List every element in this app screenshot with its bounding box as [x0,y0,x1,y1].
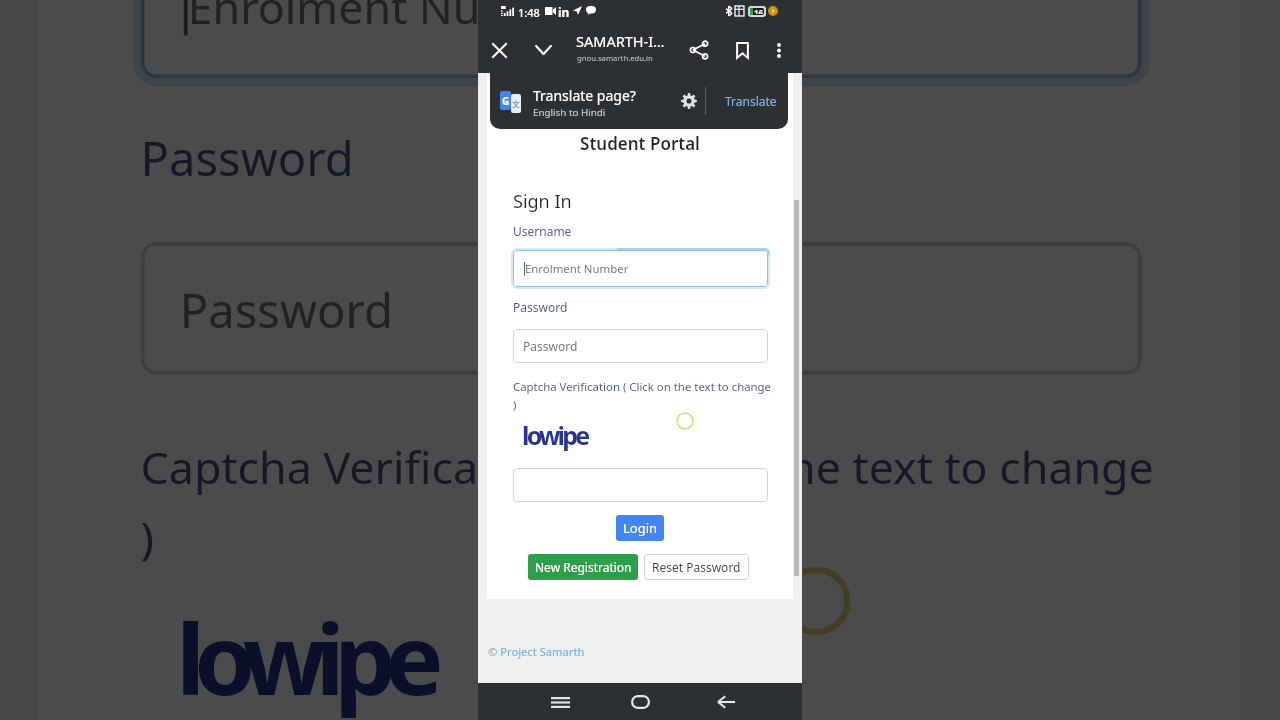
staticText: Translate page? [533,86,636,105]
staticText: Enrolment Number [188,0,596,39]
staticText: Translate [725,93,777,109]
button[interactable]: Expand [523,30,563,70]
button[interactable]: New Registration [528,554,638,580]
staticText: Password [141,125,357,187]
staticText: Password [180,277,396,340]
staticText: Enrolment Number [525,261,629,277]
button[interactable]: Password [513,329,768,363]
staticText: Password [523,338,578,354]
staticText: SAMARTH-I… [576,31,665,51]
staticText: gnou.samarth.edu.in [577,53,653,63]
staticText: 文 [512,99,520,109]
button[interactable]: Bookmark [722,30,762,70]
staticText: lowipe [522,418,588,452]
button[interactable]: Close [479,30,519,70]
staticText: in [558,4,570,20]
staticText: Username [513,223,572,239]
button[interactable]: Enrolment Number [141,0,1142,78]
staticText: G [502,94,510,108]
staticText: Sign In [513,189,572,214]
button[interactable]: Password [141,242,1142,375]
staticText: 1:48 [518,5,540,20]
button[interactable]: More options [759,30,799,70]
staticText: Captcha Verification ( Click on the text… [513,379,793,412]
button[interactable]: Share [679,30,719,70]
staticText: Reset Password [652,559,741,575]
staticText: Captcha Verification ( Click on the text… [141,437,1240,566]
staticText: 16 [754,7,764,14]
button[interactable]: Recents [542,684,578,720]
button[interactable] [513,468,768,502]
button[interactable]: SAMARTH-I… [566,31,686,69]
button[interactable]: Login [616,515,664,541]
button[interactable]: Back [708,684,744,720]
button[interactable]: Translate settings [673,85,705,117]
staticText: New Registration [535,559,632,575]
button[interactable]: Home [622,684,658,720]
button[interactable]: Reset Password [644,554,749,580]
button[interactable]: © Project Samarth [488,644,585,659]
staticText: English to Hindi [533,106,606,119]
button[interactable]: Translate [719,83,783,119]
staticText: Login [623,519,658,537]
staticText: Password [513,299,568,315]
staticText: lowipe [176,589,435,720]
button[interactable]: Enrolment Number [513,250,768,287]
staticText: Student Portal [487,132,793,155]
